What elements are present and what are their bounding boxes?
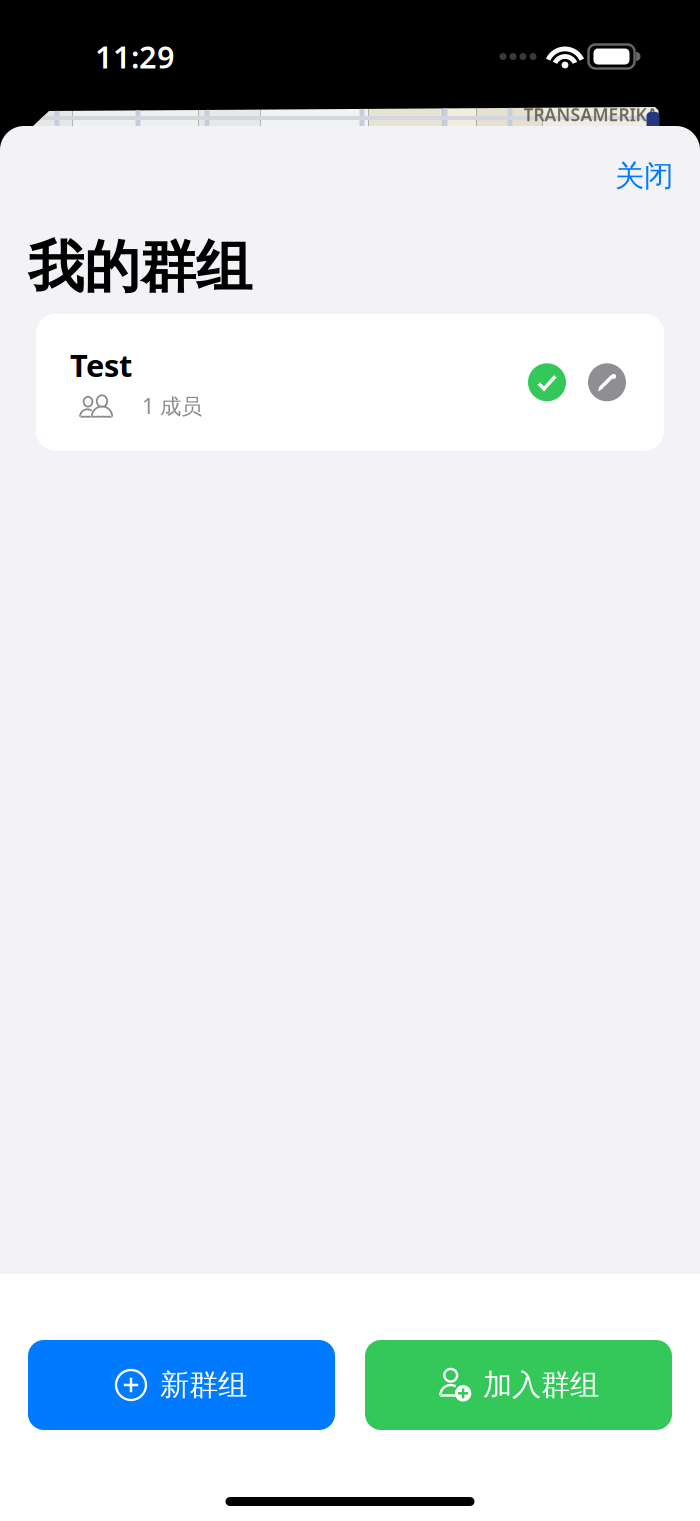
staticText: 1 成员 [142,391,202,420]
button[interactable]: Edit group [588,363,626,401]
staticText: TRANSAMERIKA [523,103,658,126]
button[interactable]: Select group [528,363,566,401]
button[interactable]: 关闭 [601,148,687,204]
button[interactable]: 加入群组 [365,1340,672,1430]
staticText: 关闭 [615,158,673,194]
staticText: 新群组 [160,1367,247,1403]
staticText: 加入群组 [483,1367,599,1403]
button[interactable]: 新群组 [28,1340,335,1430]
staticText: 我的群组 [28,233,252,302]
staticText: Test [70,345,132,385]
staticText: 11:29 [95,36,175,77]
